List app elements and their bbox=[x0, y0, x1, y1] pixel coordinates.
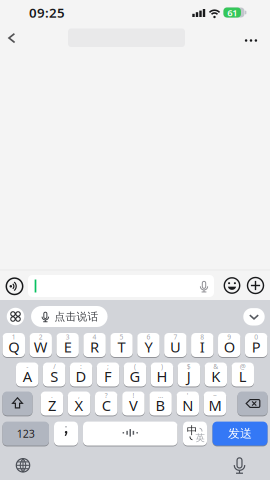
button[interactable] bbox=[4, 276, 24, 296]
staticText: X bbox=[75, 396, 84, 415]
staticText: V bbox=[129, 396, 138, 415]
staticText: 4 bbox=[93, 332, 97, 341]
staticText: S bbox=[50, 367, 58, 386]
button[interactable]: . bbox=[41, 390, 63, 416]
button[interactable]: 2 bbox=[29, 332, 52, 358]
button[interactable]: 1 bbox=[2, 332, 25, 358]
staticText: . bbox=[51, 391, 53, 400]
button[interactable] bbox=[243, 308, 265, 325]
staticText: 9 bbox=[227, 332, 231, 341]
staticText: 2 bbox=[39, 332, 43, 341]
staticText: F bbox=[104, 367, 112, 386]
staticText: - bbox=[26, 362, 28, 371]
staticText: $ bbox=[187, 362, 191, 371]
button[interactable]: 4 bbox=[83, 332, 106, 358]
staticText: A bbox=[23, 367, 32, 386]
button[interactable] bbox=[222, 275, 242, 295]
button[interactable] bbox=[2, 390, 32, 416]
staticText: T bbox=[117, 337, 125, 357]
button[interactable]: 点击说话 bbox=[31, 306, 107, 327]
staticText: P bbox=[252, 337, 261, 357]
button[interactable]: ! bbox=[122, 390, 145, 416]
staticText: 1 bbox=[12, 332, 16, 341]
staticText: I bbox=[200, 337, 205, 357]
staticText: ' bbox=[187, 391, 189, 400]
button[interactable] bbox=[83, 421, 177, 447]
button[interactable]: 发送 bbox=[212, 421, 267, 447]
staticText: 0 bbox=[254, 332, 258, 341]
button[interactable]: ~ bbox=[204, 390, 226, 416]
staticText: 7 bbox=[173, 332, 177, 341]
staticText: … bbox=[158, 391, 163, 400]
button[interactable]: ; bbox=[97, 361, 119, 387]
button[interactable]: $ bbox=[178, 361, 200, 387]
staticText: Q bbox=[8, 337, 19, 357]
staticText: K bbox=[211, 367, 220, 386]
staticText: , bbox=[78, 391, 80, 400]
staticText: ! bbox=[132, 391, 134, 400]
staticText: 点击说话 bbox=[54, 310, 98, 323]
button[interactable] bbox=[14, 456, 32, 474]
staticText: 61 bbox=[227, 6, 237, 19]
button[interactable]: 3 bbox=[56, 332, 79, 358]
staticText: : bbox=[80, 362, 82, 371]
button[interactable]: ' bbox=[176, 390, 199, 416]
button[interactable]: / bbox=[43, 361, 65, 387]
staticText: 中 bbox=[187, 424, 198, 437]
staticText: D bbox=[76, 367, 87, 386]
staticText: 英 bbox=[195, 432, 204, 444]
button[interactable]: 6 bbox=[137, 332, 160, 358]
staticText: ) bbox=[161, 362, 163, 371]
staticText: 8 bbox=[200, 332, 204, 341]
staticText: N bbox=[182, 396, 193, 415]
button[interactable] bbox=[245, 275, 265, 295]
button[interactable] bbox=[237, 390, 267, 416]
staticText: 6 bbox=[146, 332, 150, 341]
button[interactable] bbox=[229, 454, 249, 474]
staticText: ( bbox=[134, 362, 136, 371]
button[interactable] bbox=[0, 26, 24, 50]
button[interactable]: 5 bbox=[110, 332, 133, 358]
button[interactable] bbox=[28, 275, 214, 297]
staticText: U bbox=[170, 337, 181, 357]
staticText: 09:25 bbox=[29, 4, 65, 21]
button[interactable] bbox=[239, 30, 263, 50]
staticText: ; bbox=[107, 362, 109, 371]
staticText: M bbox=[208, 396, 221, 415]
staticText: / bbox=[53, 362, 55, 371]
staticText: G bbox=[129, 367, 140, 386]
button[interactable]: ) bbox=[151, 361, 173, 387]
staticText: ? bbox=[105, 391, 108, 400]
staticText: 123 bbox=[17, 426, 35, 441]
button[interactable]: ? bbox=[95, 390, 117, 416]
button[interactable]: 7 bbox=[164, 332, 187, 358]
staticText: J bbox=[187, 367, 191, 386]
button[interactable]: , bbox=[68, 390, 90, 416]
staticText: @ bbox=[240, 362, 246, 371]
staticText: C bbox=[102, 396, 111, 415]
staticText: B bbox=[156, 396, 166, 415]
button[interactable]: … bbox=[149, 390, 172, 416]
button[interactable]: : bbox=[70, 361, 92, 387]
staticText: & bbox=[213, 362, 218, 371]
button[interactable]: 8 bbox=[191, 332, 214, 358]
button[interactable] bbox=[5, 306, 25, 326]
button[interactable]: 0 bbox=[245, 332, 267, 358]
staticText: L bbox=[239, 367, 247, 386]
button[interactable]: 中 bbox=[183, 421, 207, 447]
staticText: Z bbox=[48, 396, 56, 415]
staticText: O bbox=[224, 337, 235, 357]
staticText: H bbox=[156, 367, 167, 386]
staticText: Y bbox=[144, 337, 152, 357]
staticText: R bbox=[90, 337, 99, 357]
button[interactable]: - bbox=[16, 361, 38, 387]
button[interactable]: @ bbox=[231, 361, 254, 387]
staticText: 3 bbox=[66, 332, 70, 341]
button[interactable]: 9 bbox=[218, 332, 240, 358]
button[interactable]: & bbox=[205, 361, 227, 387]
staticText: ~ bbox=[213, 391, 217, 400]
button[interactable] bbox=[54, 421, 78, 447]
staticText: E bbox=[64, 337, 72, 357]
button[interactable]: 123 bbox=[2, 421, 49, 447]
button[interactable]: ( bbox=[124, 361, 146, 387]
